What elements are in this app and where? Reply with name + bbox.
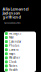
staticText: Notes (9, 64, 17, 68)
staticText: Jadenson (3, 10, 21, 16)
staticText: SUGGESTIONS (4, 21, 20, 25)
staticText: Photos (9, 44, 19, 47)
staticText: Messages (9, 32, 21, 35)
staticText: girlfriend (3, 14, 22, 20)
staticText: Health (9, 68, 18, 72)
staticText: Mail (9, 36, 14, 39)
staticText: Weather (9, 56, 20, 60)
staticText: Alla Lemantel (3, 6, 29, 12)
staticText: Maps (9, 52, 15, 55)
staticText: Camera (9, 48, 18, 51)
staticText: Clock (9, 60, 16, 64)
staticText: Calendar (9, 40, 21, 43)
